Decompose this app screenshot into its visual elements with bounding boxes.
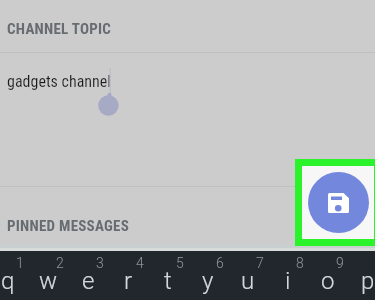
button[interactable]: r — [107, 251, 147, 300]
staticText: PINNED MESSAGES — [7, 217, 129, 235]
button[interactable]: y — [187, 251, 227, 300]
staticText: 5 — [176, 255, 184, 271]
button[interactable]: w — [27, 251, 67, 300]
button[interactable]: t — [147, 251, 187, 300]
staticText: t — [164, 267, 172, 295]
staticText: y — [202, 267, 214, 295]
button[interactable]: q — [0, 251, 27, 300]
button[interactable]: PINNED MESSAGES — [0, 187, 375, 249]
staticText: 6 — [216, 255, 224, 271]
staticText: p — [361, 267, 375, 295]
staticText: 9 — [336, 255, 344, 271]
button[interactable]: CHANNEL TOPIC — [0, 0, 375, 53]
button[interactable]: o — [307, 251, 347, 300]
button[interactable]: p — [347, 251, 375, 300]
staticText: 1 — [16, 255, 24, 271]
staticText: o — [321, 267, 335, 295]
staticText: 7 — [256, 255, 264, 271]
staticText: 2 — [56, 255, 64, 271]
staticText: e — [82, 267, 95, 295]
staticText: 8 — [296, 255, 304, 271]
button[interactable]: i — [267, 251, 307, 300]
staticText: w — [39, 267, 58, 295]
staticText: 4 — [136, 255, 144, 271]
staticText: CHANNEL TOPIC — [7, 20, 112, 38]
staticText: r — [124, 267, 133, 295]
staticText: gadgets channel — [7, 72, 112, 91]
staticText: 3 — [96, 255, 104, 271]
button[interactable]: u — [227, 251, 267, 300]
staticText: q — [1, 267, 15, 295]
staticText: i — [285, 267, 291, 295]
staticText: u — [241, 267, 255, 295]
button[interactable]: Save — [308, 172, 369, 233]
button[interactable]: e — [67, 251, 107, 300]
